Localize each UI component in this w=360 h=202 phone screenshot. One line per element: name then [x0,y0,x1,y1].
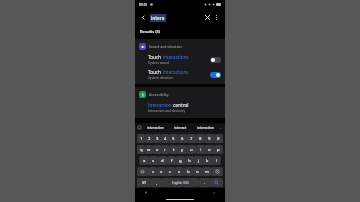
staticText: interactions [163,54,189,60]
staticText: z [152,169,154,175]
staticText: b [187,169,190,175]
staticText: control [172,102,189,108]
staticText: 4 [164,136,167,142]
button[interactable]: Voice input [143,190,149,196]
button[interactable]: . [199,178,210,187]
button[interactable]: 5 [169,134,178,143]
staticText: x [160,169,163,175]
button[interactable]: x [157,167,166,176]
button[interactable]: English (US) [162,178,199,187]
button[interactable]: g [176,156,185,165]
staticText: i [200,147,202,153]
button[interactable]: i [196,145,205,154]
button[interactable]: 2 [145,134,153,143]
staticText: e [156,147,159,153]
staticText: w [147,147,151,153]
button[interactable]: 1 [137,134,145,143]
staticText: Results (5) [140,29,161,34]
button[interactable]: Symbols [137,178,151,187]
button[interactable]: More suggestions [218,125,223,130]
staticText: v [178,169,181,175]
button[interactable]: Sound and vibration [135,41,225,52]
button[interactable]: Hide keyboard [211,190,217,196]
staticText: Touch [148,54,163,60]
staticText: . [204,180,206,186]
button[interactable]: q [137,145,145,154]
button[interactable]: h [185,156,194,165]
staticText: 3 [156,136,159,142]
button[interactable]: Interaction [135,100,225,116]
staticText: u [190,147,193,153]
button[interactable]: 8 [196,134,205,143]
button[interactable]: 3 [153,134,161,143]
staticText: s [152,158,155,164]
staticText: interact [174,125,187,130]
button[interactable]: v [175,167,184,176]
staticText: 9 [208,136,211,142]
button[interactable]: Touch [135,52,225,67]
staticText: System sound [148,61,170,65]
button[interactable]: u [187,145,196,154]
button[interactable]: 7 [187,134,196,143]
button[interactable]: Accessibility [135,89,225,100]
button[interactable]: s [149,156,158,165]
button[interactable]: More options [212,13,221,22]
staticText: intera [151,15,165,21]
staticText: 8 [199,136,202,142]
staticText: 09:16 [139,3,148,7]
button[interactable]: Search [210,178,223,187]
button[interactable]: Backspace [211,167,223,176]
staticText: !#1 [142,181,147,185]
button[interactable]: Toolbar [137,125,142,130]
button[interactable]: c [166,167,175,176]
button[interactable]: intera [151,15,165,21]
button[interactable]: Toggle off [210,57,221,63]
button[interactable]: e [153,145,161,154]
staticText: 1 [140,136,143,142]
button[interactable]: o [205,145,214,154]
button[interactable]: w [145,145,153,154]
staticText: 7 [190,136,193,142]
staticText: … [219,125,223,130]
button[interactable]: Touch [135,67,225,82]
staticText: k [206,158,209,164]
button[interactable]: r [161,145,169,154]
button[interactable]: m [202,167,211,176]
staticText: d [161,158,164,164]
staticText: y [181,147,184,153]
button[interactable]: Shift [137,167,148,176]
button[interactable]: d [158,156,167,165]
button[interactable]: z [148,167,157,176]
button[interactable]: f [167,156,176,165]
staticText: 5 [172,136,175,142]
staticText: , [156,180,158,186]
staticText: p [217,147,220,153]
button[interactable]: y [178,145,187,154]
staticText: r [164,147,166,153]
button[interactable]: Clear [203,13,212,22]
staticText: System vibration [148,76,173,80]
button[interactable]: t [169,145,178,154]
button[interactable]: , [151,178,162,187]
button[interactable]: b [184,167,193,176]
button[interactable]: interactive [142,125,168,130]
staticText: t [173,147,175,153]
button[interactable]: 6 [178,134,187,143]
button[interactable]: p [214,145,223,154]
button[interactable]: n [193,167,202,176]
button[interactable]: k [203,156,212,165]
button[interactable]: Toggle on [210,72,221,78]
button[interactable]: 9 [205,134,214,143]
button[interactable]: interact [168,125,193,130]
button[interactable]: 0 [214,134,223,143]
button[interactable]: Back [139,13,148,22]
staticText: Touch [148,69,163,75]
button[interactable]: interaction [193,125,218,130]
staticText: Interaction and dexterity [148,109,186,113]
button[interactable]: l [212,156,221,165]
button[interactable]: 4 [161,134,169,143]
button[interactable]: a [139,156,149,165]
staticText: English (US) [172,181,189,185]
button[interactable]: j [194,156,203,165]
staticText: q [140,147,143,153]
